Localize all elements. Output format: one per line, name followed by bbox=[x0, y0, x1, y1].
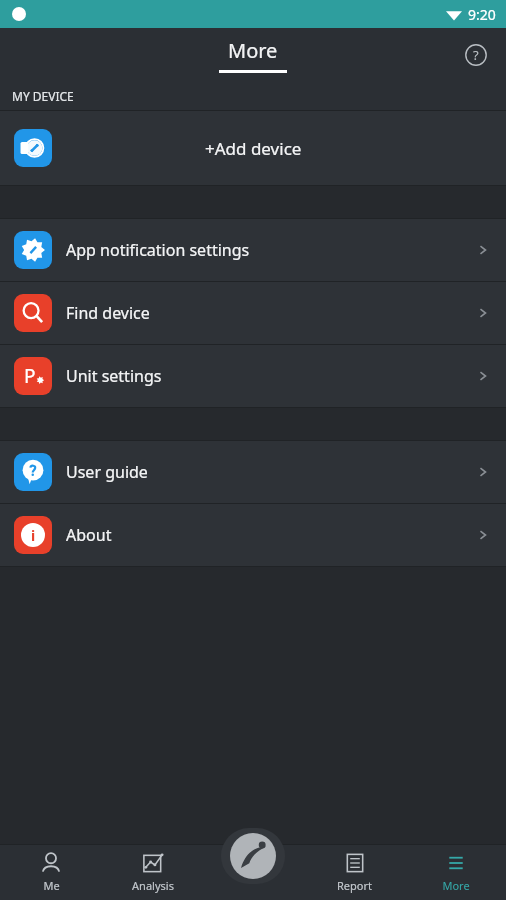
button[interactable]: Help bbox=[454, 33, 498, 77]
button[interactable]: Analysis bbox=[102, 844, 203, 900]
button[interactable]: User guide bbox=[0, 441, 506, 503]
button[interactable]: +Add device bbox=[0, 111, 506, 185]
staticText: Unit settings bbox=[66, 365, 476, 387]
staticText: Analysis bbox=[132, 878, 174, 893]
staticText: Me bbox=[43, 878, 60, 893]
staticText: ? bbox=[473, 46, 479, 64]
staticText: More bbox=[442, 878, 470, 893]
button[interactable]: Find device bbox=[0, 282, 506, 344]
button[interactable]: i bbox=[0, 504, 506, 566]
staticText: 9:20 bbox=[468, 5, 496, 24]
staticText: Report bbox=[337, 878, 372, 893]
staticText: +Add device bbox=[205, 137, 302, 160]
staticText: MY DEVICE bbox=[12, 88, 74, 104]
staticText: User guide bbox=[66, 461, 476, 483]
staticText: i bbox=[31, 526, 36, 545]
button[interactable]: Me bbox=[0, 844, 102, 900]
staticText: Find device bbox=[66, 302, 476, 324]
button[interactable]: P bbox=[0, 345, 506, 407]
staticText: App notification settings bbox=[66, 239, 476, 261]
staticText: P bbox=[24, 363, 36, 389]
staticText: About bbox=[66, 524, 476, 546]
staticText: More bbox=[228, 37, 278, 64]
button[interactable]: More bbox=[405, 844, 506, 900]
button[interactable]: Report bbox=[304, 844, 405, 900]
button[interactable]: Start activity bbox=[221, 828, 285, 884]
button[interactable]: App notification settings bbox=[0, 219, 506, 281]
